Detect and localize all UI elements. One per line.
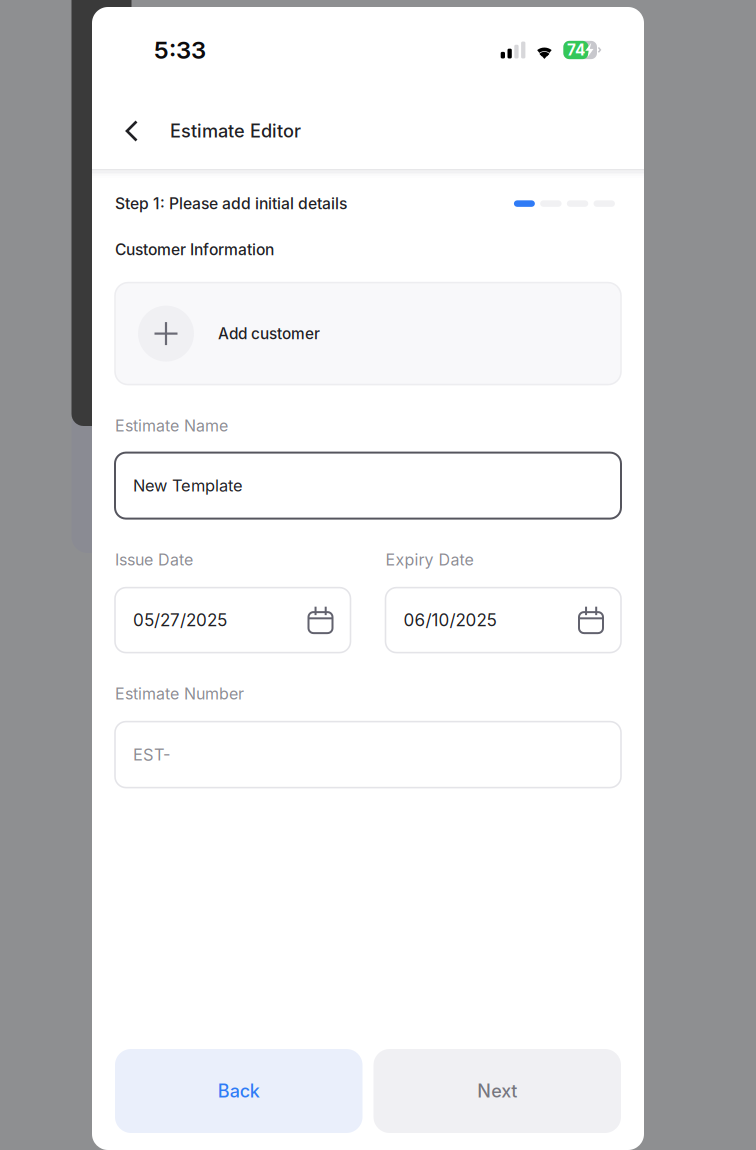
staticText: EST- [133, 745, 171, 764]
staticText: New Template [133, 476, 243, 495]
staticText: Next [477, 1080, 517, 1102]
button[interactable]: Add customer [115, 283, 621, 385]
staticText: Step 1: Please add initial details [115, 194, 347, 213]
staticText: Estimate Editor [170, 120, 301, 142]
button[interactable]: Back [115, 1049, 362, 1133]
staticText: Estimate Number [115, 684, 244, 703]
staticText: 05/27/2025 [133, 610, 227, 630]
staticText: Expiry Date [385, 550, 473, 569]
staticText: 06/10/2025 [403, 610, 496, 630]
button[interactable]: Back [107, 107, 155, 155]
staticText: 5:33 [154, 35, 206, 64]
staticText: Back [218, 1080, 260, 1102]
staticText: Customer Information [115, 240, 274, 259]
staticText: 74 [567, 41, 585, 59]
staticText: Add customer [218, 324, 320, 343]
staticText: Issue Date [115, 550, 193, 569]
staticText: Estimate Name [115, 416, 228, 435]
button[interactable]: Next [373, 1049, 621, 1133]
